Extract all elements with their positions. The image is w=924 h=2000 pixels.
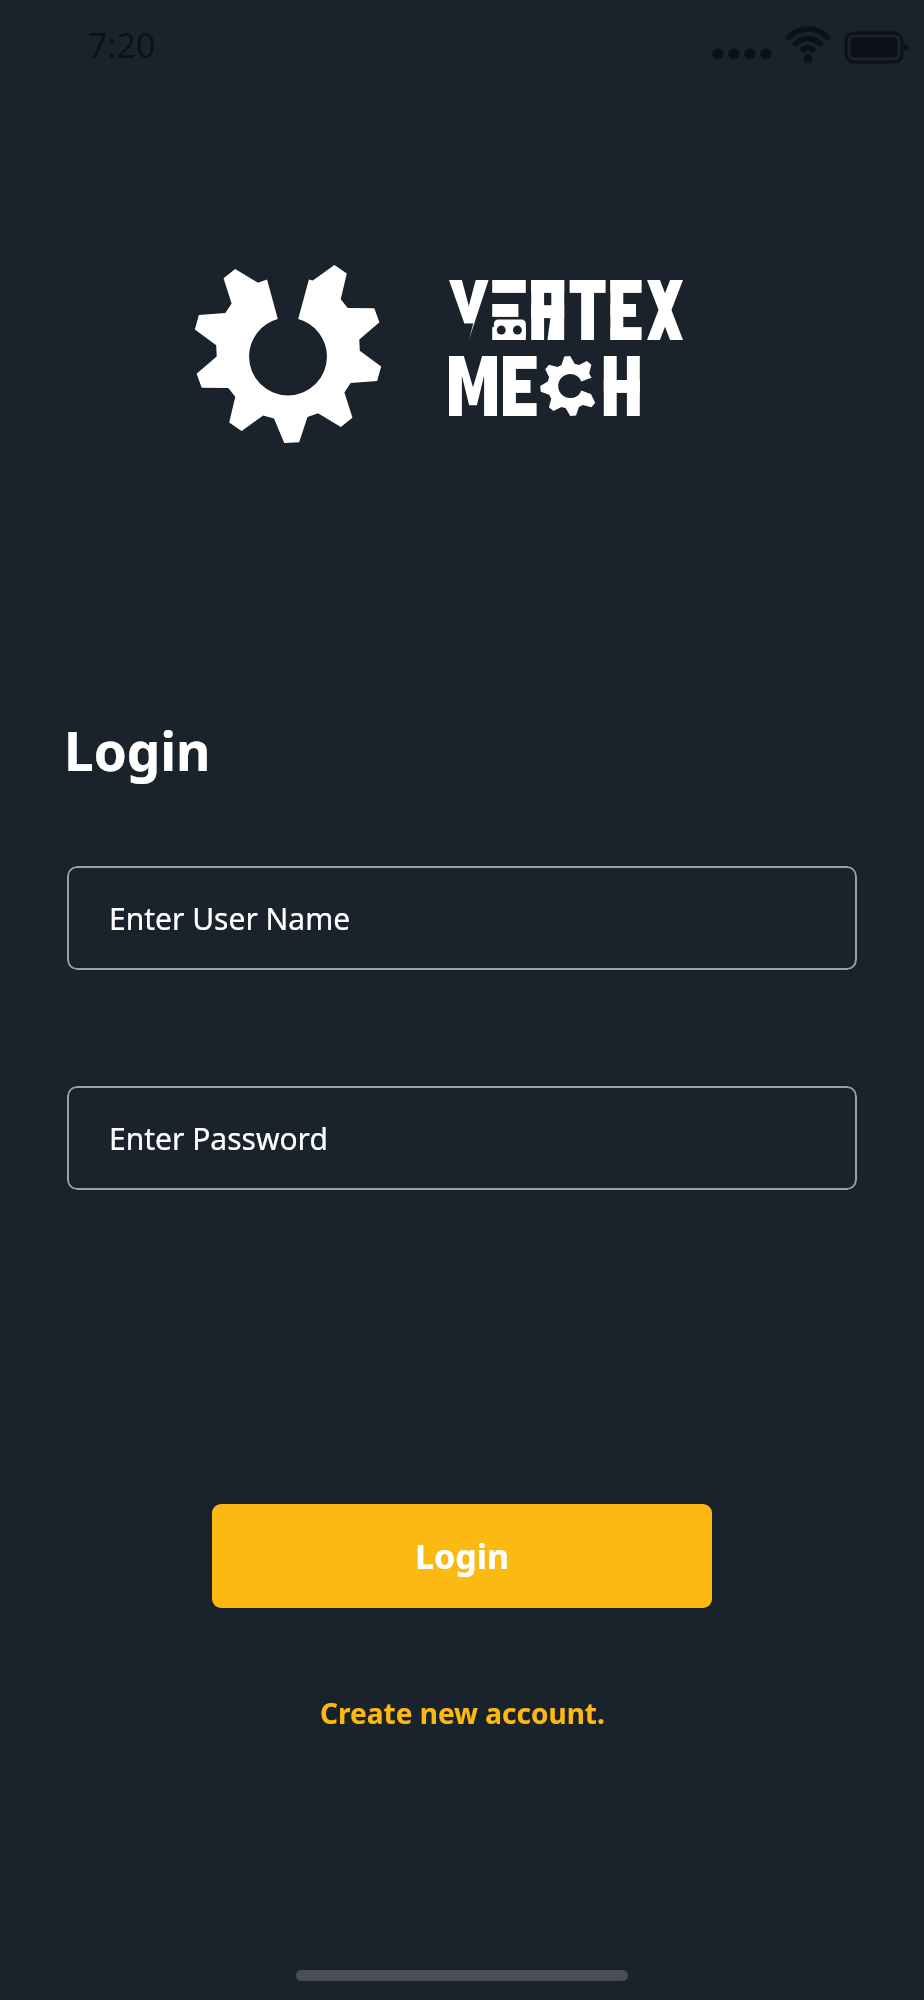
- staticText: Enter User Name: [109, 898, 351, 939]
- staticText: Create new account.: [320, 1694, 605, 1732]
- staticText: Enter Password: [109, 1118, 328, 1159]
- button[interactable]: Create new account.: [0, 1684, 924, 1742]
- staticText: Login: [64, 714, 211, 786]
- button[interactable]: Password input: [67, 1086, 857, 1190]
- staticText: Login: [415, 1533, 510, 1579]
- button[interactable]: User name input: [67, 866, 857, 970]
- button[interactable]: Login: [212, 1504, 712, 1608]
- staticText: 7:20: [88, 22, 156, 68]
